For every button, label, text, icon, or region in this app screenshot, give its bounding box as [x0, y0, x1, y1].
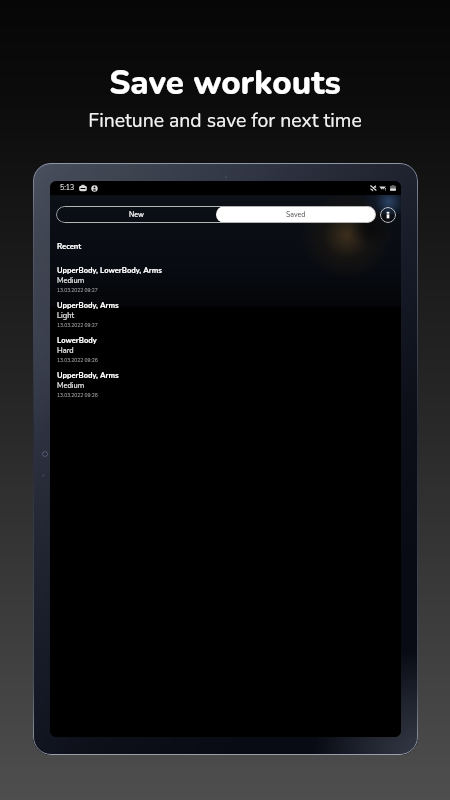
staticText: 13.03.2022 09:26	[57, 357, 98, 364]
button[interactable]: Saved	[216, 206, 376, 223]
staticText: Medium	[57, 275, 85, 285]
staticText: 5:13	[60, 183, 75, 193]
staticText: UpperBody, Arms	[57, 370, 119, 380]
button[interactable]: UpperBody, Arms	[50, 300, 401, 335]
staticText: Light	[57, 310, 75, 320]
staticText: 13.03.2022 09:26	[57, 392, 98, 399]
staticText: Save workouts	[109, 61, 341, 106]
staticText: Recent	[57, 241, 82, 251]
staticText: New	[129, 210, 144, 220]
staticText: 13.03.2022 09:27	[57, 322, 98, 329]
staticText: 13.03.2022 09:27	[57, 287, 98, 294]
staticText: Saved	[286, 210, 306, 220]
staticText: Finetune and save for next time	[88, 107, 362, 133]
button[interactable]: Info	[380, 207, 396, 223]
staticText: UpperBody, Arms	[57, 300, 119, 310]
button[interactable]: LowerBody	[50, 335, 401, 370]
staticText: Hard	[57, 345, 74, 355]
button[interactable]: New	[56, 206, 216, 223]
staticText: LowerBody	[57, 335, 97, 345]
button[interactable]: UpperBody, Arms	[50, 370, 401, 405]
button[interactable]: UpperBody, LowerBody, Arms	[50, 265, 401, 300]
staticText: Medium	[57, 380, 85, 390]
staticText: UpperBody, LowerBody, Arms	[57, 265, 162, 275]
